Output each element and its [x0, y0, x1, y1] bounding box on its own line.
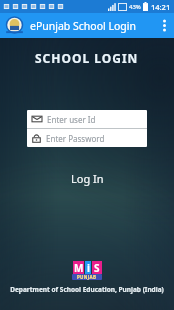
staticText: SCHOOL LOGIN	[35, 50, 139, 66]
staticText: S	[94, 261, 100, 274]
staticText: M	[74, 261, 84, 274]
button[interactable]: More options	[154, 13, 174, 38]
staticText: Log In	[71, 171, 104, 186]
staticText: 43%	[129, 3, 141, 11]
button[interactable]: Enter Password	[27, 129, 147, 147]
staticText: i	[87, 261, 90, 274]
staticText: Enter Password	[46, 133, 105, 144]
button[interactable]: Enter user Id	[27, 110, 147, 128]
staticText: Department of School Education, Punjab (…	[10, 285, 164, 294]
staticText: Enter user Id	[47, 114, 96, 125]
staticText: ePunjab School Login	[30, 19, 136, 33]
staticText: 14:21	[151, 2, 171, 12]
button[interactable]: Log In	[0, 167, 174, 189]
staticText: PUNJAB	[77, 274, 97, 280]
